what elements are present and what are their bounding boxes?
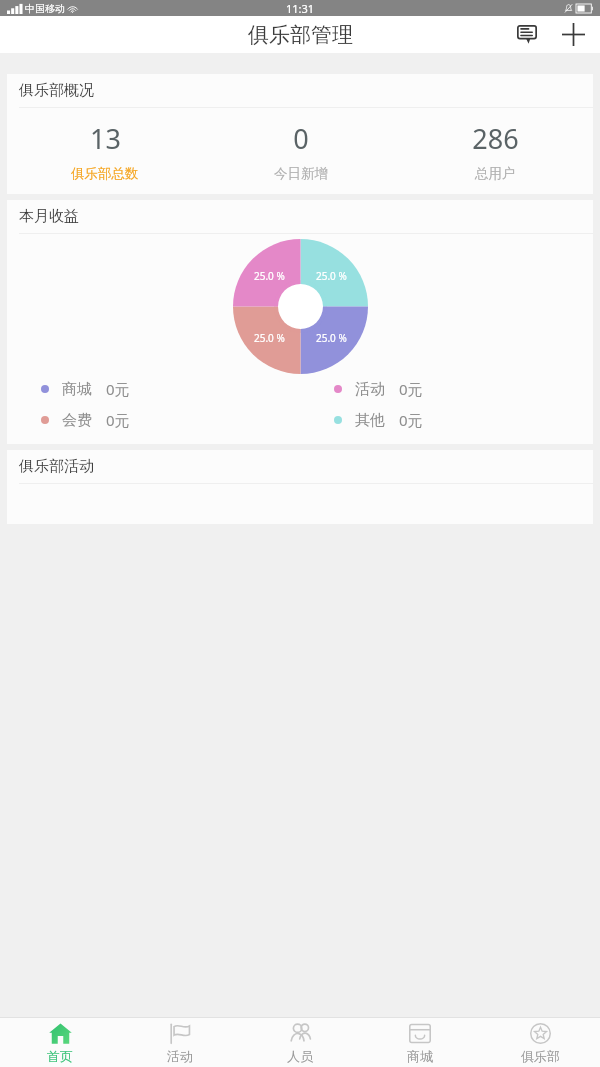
staticText: 25.0 % [316,331,347,345]
button[interactable]: 商城 [7,379,300,399]
button[interactable]: 俱乐部概况 [7,74,593,194]
staticText: 25.0 % [316,269,347,283]
button[interactable]: 活动 [300,379,593,399]
staticText: 俱乐部 [521,1048,560,1064]
button[interactable]: 13 [7,120,203,182]
button[interactable]: Add [559,20,588,49]
staticText: 其他 [355,411,385,430]
button[interactable]: 活动 [120,1018,240,1067]
staticText: 中国移动 [25,2,65,15]
staticText: 25.0 % [254,269,285,283]
staticText: 25.0 % [254,331,285,345]
button[interactable]: 俱乐部活动 [7,450,593,524]
staticText: 人员 [287,1048,313,1064]
button[interactable]: 会费 [7,410,300,430]
staticText: 0元 [106,410,130,430]
button[interactable]: 人员 [240,1018,360,1067]
staticText: 11:31 [286,1,315,16]
button[interactable]: 其他 [300,410,593,430]
staticText: 0 [293,120,309,157]
staticText: 286 [472,120,519,157]
staticText: 0元 [399,410,423,430]
staticText: 商城 [407,1048,433,1064]
button[interactable]: 0 [203,120,398,182]
staticText: 俱乐部总数 [71,165,139,182]
staticText: 0元 [399,379,423,399]
staticText: 总用户 [475,165,516,182]
staticText: 0元 [106,379,130,399]
button[interactable]: 商城 [360,1018,480,1067]
staticText: 俱乐部概况 [19,81,94,100]
staticText: 活动 [167,1048,193,1064]
button[interactable]: Messages [513,21,540,48]
button[interactable]: 首页 [0,1018,120,1067]
staticText: 今日新增 [274,165,328,182]
button[interactable]: 286 [398,120,593,182]
staticText: 俱乐部活动 [19,457,94,476]
staticText: 商城 [62,380,92,399]
button[interactable]: 俱乐部 [480,1018,600,1067]
staticText: 首页 [47,1048,73,1064]
staticText: 会费 [62,411,92,430]
staticText: 活动 [355,380,385,399]
staticText: 俱乐部管理 [248,22,353,48]
staticText: 13 [90,120,121,157]
staticText: 本月收益 [19,207,79,226]
